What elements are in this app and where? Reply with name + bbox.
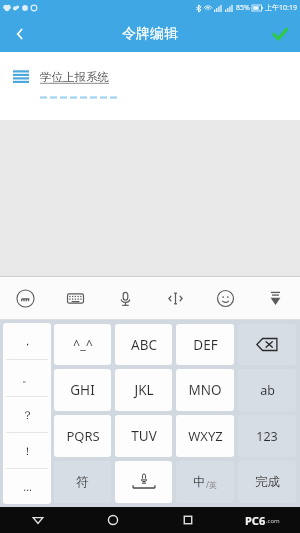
button[interactable]: Space	[115, 461, 172, 503]
staticText: ？	[22, 408, 33, 422]
button[interactable]: Voice input	[100, 277, 150, 319]
button[interactable]: 123	[238, 415, 296, 457]
staticText: DEF	[193, 336, 218, 354]
button[interactable]: ^_^	[54, 324, 111, 365]
button[interactable]: 。	[3, 360, 51, 396]
staticText: 令牌编辑	[122, 25, 178, 43]
button[interactable]: Menu	[10, 66, 32, 88]
button[interactable]: GHI	[54, 369, 111, 411]
staticText: ABC	[131, 336, 157, 354]
button[interactable]: JKL	[115, 369, 172, 411]
staticText: 。	[22, 371, 33, 385]
button[interactable]: ABC	[115, 324, 172, 365]
button[interactable]: ，	[3, 323, 51, 359]
button[interactable]: Back	[0, 16, 40, 52]
button[interactable]: DEF	[176, 324, 234, 365]
button[interactable]: ？	[3, 397, 51, 432]
staticText: PQRS	[66, 427, 100, 445]
button[interactable]: 中	[176, 461, 234, 503]
button[interactable]: Keyboard	[50, 277, 100, 319]
button[interactable]: PQRS	[54, 415, 111, 457]
staticText: 85%	[236, 3, 250, 13]
button[interactable]: Backspace	[238, 324, 296, 365]
button[interactable]: TUV	[115, 415, 172, 457]
staticText: PC6	[245, 513, 266, 528]
staticText: 完成	[255, 474, 280, 490]
button[interactable]: MNO	[176, 369, 234, 411]
button[interactable]: Hide keyboard	[250, 277, 300, 319]
staticText: WXYZ	[188, 427, 223, 445]
staticText: ，	[22, 334, 33, 348]
button[interactable]: IME	[0, 277, 50, 319]
staticText: …	[23, 479, 32, 494]
staticText: .com	[266, 517, 280, 525]
button[interactable]: 符	[54, 461, 111, 503]
staticText: ^_^	[73, 336, 93, 353]
staticText: TUV	[131, 427, 157, 445]
staticText: ！	[22, 444, 33, 458]
staticText: 符	[76, 474, 89, 490]
staticText: 123	[256, 428, 278, 445]
button[interactable]: Back	[0, 507, 75, 533]
staticText: MNO	[188, 381, 222, 399]
button[interactable]: 完成	[238, 461, 296, 503]
button[interactable]: WXYZ	[176, 415, 234, 457]
staticText: GHI	[70, 381, 95, 399]
staticText: 学位上报系统	[40, 70, 109, 84]
button[interactable]: Emoji	[200, 277, 250, 319]
staticText: JKL	[134, 381, 154, 399]
staticText: 中	[193, 474, 206, 490]
button[interactable]: ab	[238, 369, 296, 411]
button[interactable]: Recent apps	[150, 507, 225, 533]
button[interactable]: …	[3, 469, 51, 504]
button[interactable]: Text cursor	[150, 277, 200, 319]
staticText: ab	[260, 382, 275, 399]
button[interactable]: ！	[3, 433, 51, 468]
staticText: /英	[206, 479, 217, 490]
button[interactable]: Home	[75, 507, 150, 533]
button[interactable]: Confirm	[260, 16, 300, 52]
staticText: 上午10:19	[265, 3, 297, 13]
